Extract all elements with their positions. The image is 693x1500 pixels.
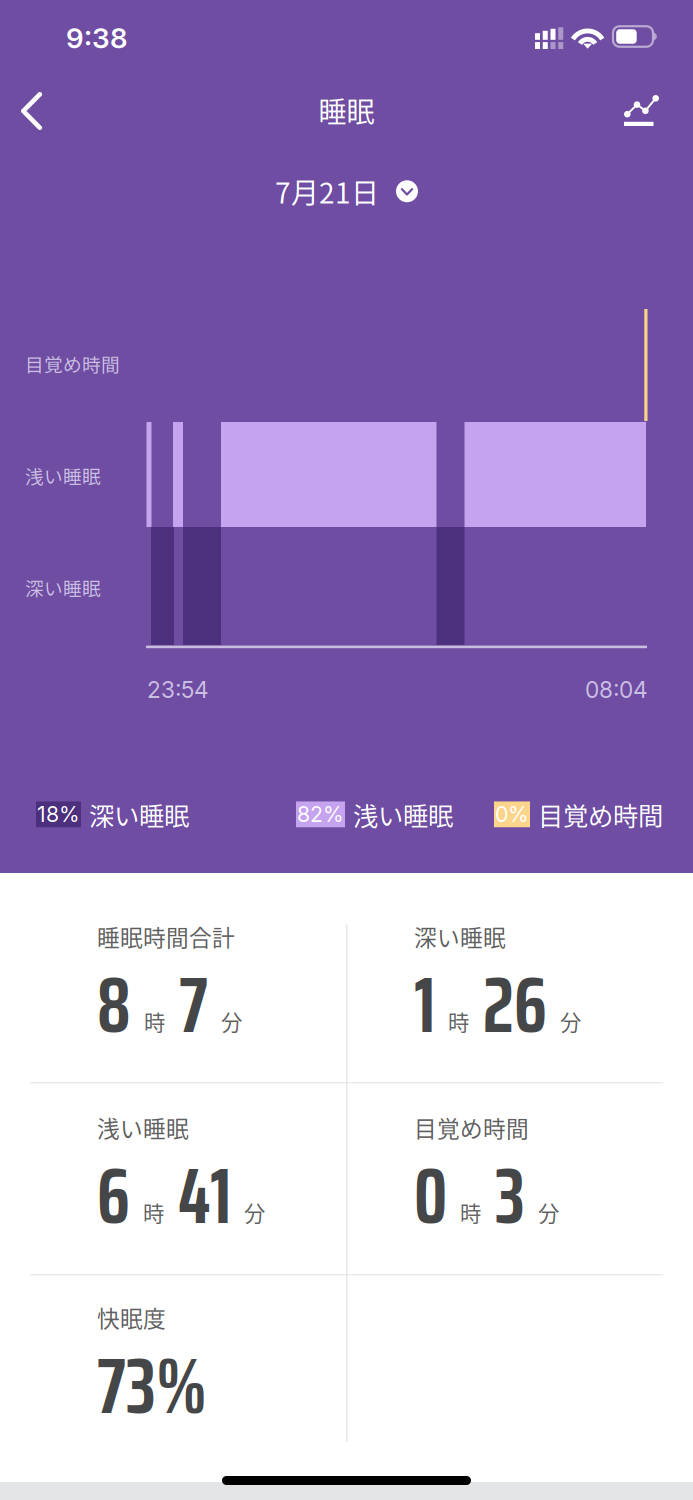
staticText: 7月21日 xyxy=(275,171,379,211)
staticText: 3 xyxy=(495,1134,525,1258)
staticText: 26 xyxy=(483,943,547,1067)
staticText: 睡眠時間合計 xyxy=(97,920,235,953)
staticText: 浅い睡眠 xyxy=(25,462,101,489)
button[interactable]: Back xyxy=(11,82,52,140)
staticText: 82% xyxy=(297,801,344,827)
staticText: 73% xyxy=(97,1324,207,1448)
staticText: 睡眠 xyxy=(318,90,374,130)
staticText: 時 xyxy=(460,1197,481,1228)
button[interactable]: 7月21日 xyxy=(263,164,430,218)
staticText: 41 xyxy=(178,1134,231,1258)
button[interactable]: Trends xyxy=(614,85,669,136)
staticText: 浅い睡眠 xyxy=(353,796,453,833)
staticText: 6 xyxy=(97,1134,130,1258)
staticText: 分 xyxy=(538,1197,559,1228)
staticText: 目覚め時間 xyxy=(25,350,120,377)
staticText: 浅い睡眠 xyxy=(97,1111,189,1144)
staticText: 深い睡眠 xyxy=(89,796,189,833)
staticText: 23:54 xyxy=(147,676,209,703)
staticText: 時 xyxy=(144,1006,165,1037)
staticText: 7 xyxy=(179,943,208,1067)
staticText: 深い睡眠 xyxy=(25,574,101,601)
staticText: 18% xyxy=(37,801,80,827)
staticText: 分 xyxy=(244,1197,265,1228)
staticText: 時 xyxy=(143,1197,164,1228)
staticText: 快眠度 xyxy=(97,1301,166,1334)
staticText: 時 xyxy=(448,1006,469,1037)
staticText: 1 xyxy=(414,943,435,1067)
staticText: 0% xyxy=(495,801,529,827)
staticText: 分 xyxy=(560,1006,581,1037)
staticText: 0 xyxy=(414,1134,447,1258)
staticText: 深い睡眠 xyxy=(414,920,506,953)
staticText: 分 xyxy=(221,1006,242,1037)
staticText: 8 xyxy=(97,943,131,1067)
staticText: 08:04 xyxy=(585,676,648,703)
staticText: 9:38 xyxy=(66,21,128,55)
staticText: 目覚め時間 xyxy=(414,1111,529,1144)
staticText: 目覚め時間 xyxy=(538,796,663,833)
